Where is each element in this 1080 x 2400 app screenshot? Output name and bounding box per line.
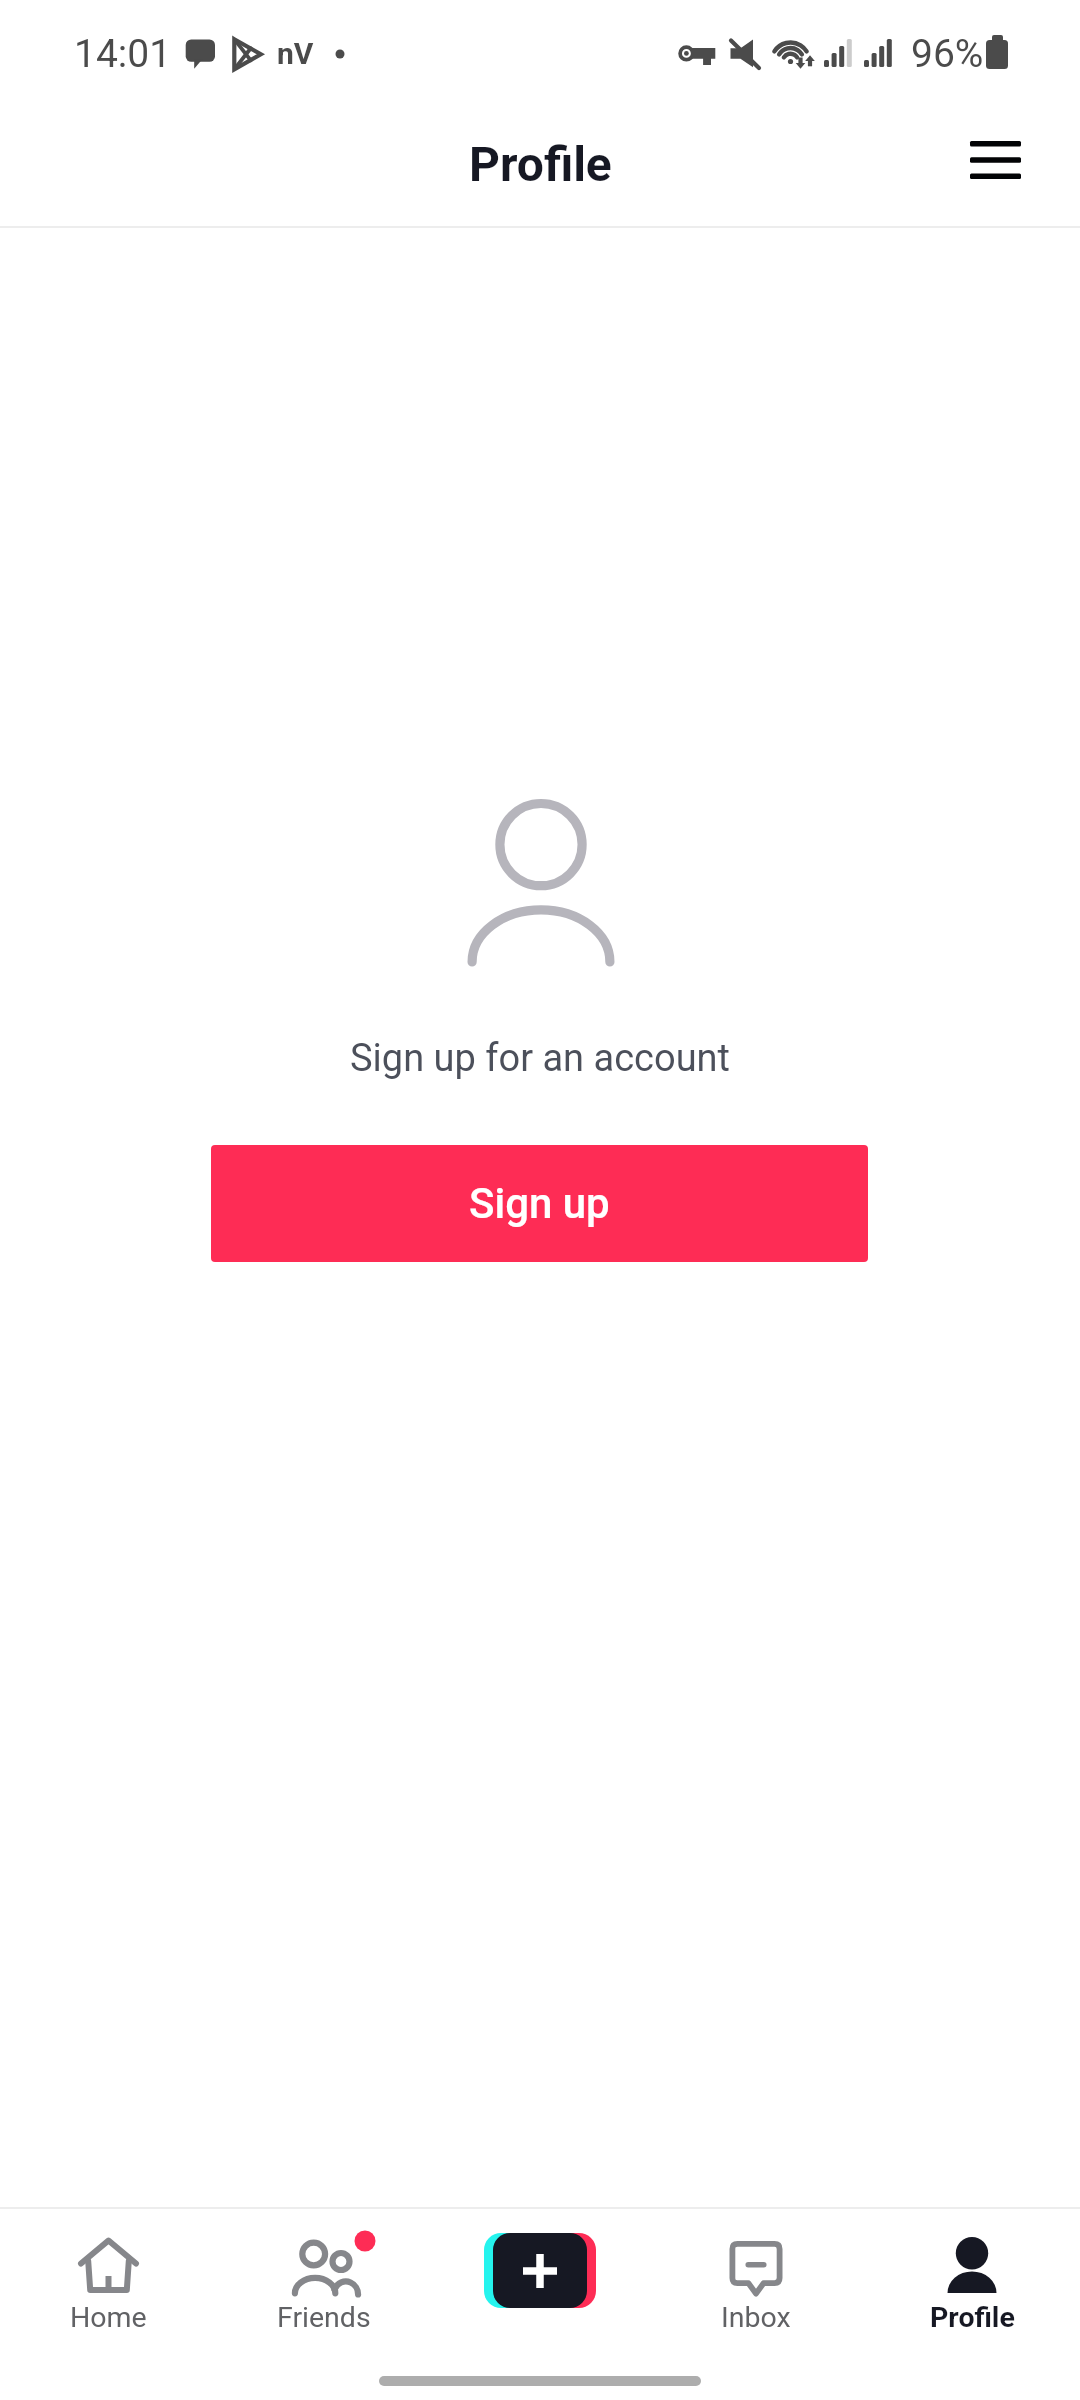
staticText: Profile xyxy=(469,136,612,192)
button[interactable]: Home xyxy=(0,2209,216,2335)
staticText: Sign up xyxy=(469,1179,610,1228)
button[interactable]: Inbox xyxy=(648,2209,864,2335)
staticText: 96% xyxy=(911,31,984,77)
staticText: Sign up for an account xyxy=(350,1036,731,1081)
button[interactable]: Sign up xyxy=(211,1145,868,1262)
staticText: Home xyxy=(70,2301,147,2334)
staticText: Profile xyxy=(930,2301,1015,2334)
staticText: Friends xyxy=(277,2301,371,2334)
button[interactable]: Create xyxy=(432,2209,648,2329)
button[interactable]: Profile xyxy=(864,2209,1080,2335)
button[interactable]: Friends xyxy=(216,2209,432,2335)
button[interactable]: Menu xyxy=(950,115,1040,205)
staticText: nV xyxy=(277,36,314,71)
staticText: Inbox xyxy=(721,2301,791,2334)
staticText: 14:01 xyxy=(74,31,172,77)
